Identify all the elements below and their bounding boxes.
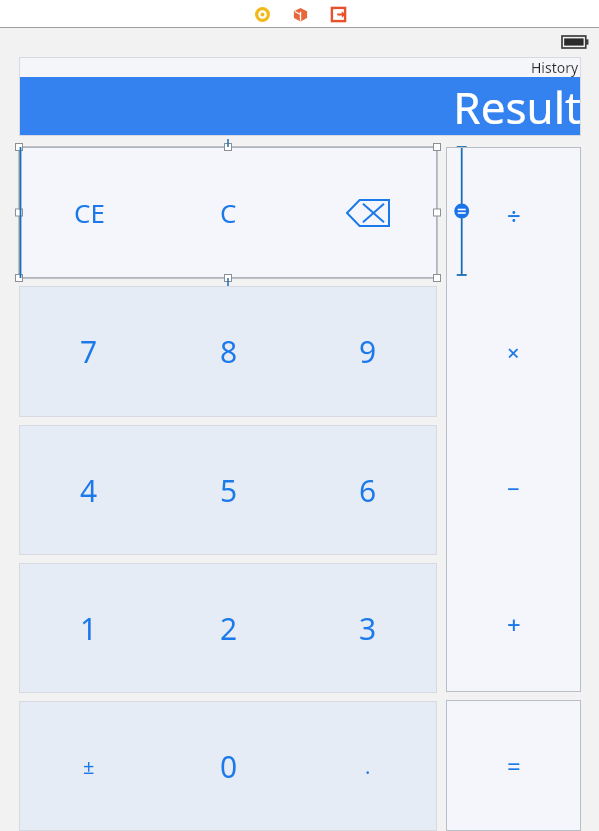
button[interactable]: 2 [159, 563, 298, 693]
button[interactable]: = [446, 700, 581, 831]
button[interactable]: C [159, 147, 298, 278]
button[interactable]: Run [329, 5, 347, 23]
staticText: 3 [359, 608, 377, 649]
button[interactable]: . [298, 701, 437, 831]
button[interactable]: × [446, 284, 581, 420]
staticText: 4 [80, 470, 98, 511]
button[interactable]: 3D view [291, 5, 309, 23]
staticText: − [507, 473, 520, 503]
staticText: 9 [359, 331, 377, 372]
button[interactable]: 7 [19, 286, 159, 417]
button[interactable]: 3 [298, 563, 437, 693]
button[interactable]: 1 [19, 563, 159, 693]
staticText: 8 [220, 331, 238, 372]
staticText: 5 [220, 470, 238, 511]
staticText: 7 [80, 331, 98, 372]
button[interactable]: Design mode [253, 5, 271, 23]
button[interactable]: 9 [298, 286, 437, 417]
staticText: C [220, 195, 237, 230]
button[interactable]: Backspace [298, 147, 437, 278]
staticText: CE [74, 195, 105, 230]
button[interactable]: 0 [159, 701, 298, 831]
staticText: ± [83, 753, 95, 780]
button[interactable]: 4 [19, 425, 159, 555]
button[interactable]: ÷ [446, 147, 581, 284]
staticText: × [507, 337, 520, 367]
button[interactable]: 6 [298, 425, 437, 555]
button[interactable]: ± [19, 701, 159, 831]
staticText: . [365, 753, 371, 780]
staticText: + [507, 608, 521, 641]
staticText: = [507, 749, 521, 782]
staticText: 6 [359, 470, 377, 511]
staticText: 0 [220, 746, 238, 787]
button[interactable]: + [446, 556, 581, 692]
staticText: History [531, 58, 579, 77]
button[interactable]: History [531, 58, 581, 77]
staticText: ÷ [507, 199, 521, 232]
staticText: Result [453, 77, 581, 136]
staticText: 1 [80, 608, 98, 649]
button[interactable]: 8 [159, 286, 298, 417]
button[interactable]: CE [19, 147, 159, 278]
staticText: 2 [220, 608, 238, 649]
button[interactable]: 5 [159, 425, 298, 555]
button[interactable]: − [446, 420, 581, 556]
